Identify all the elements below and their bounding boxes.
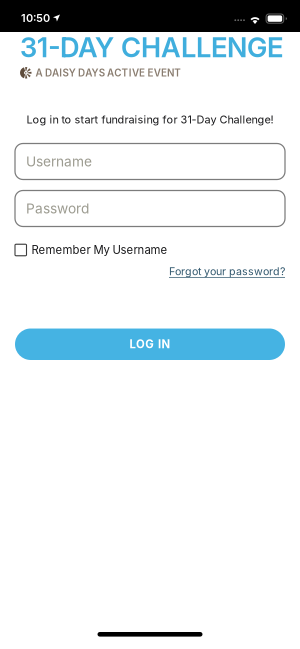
button[interactable]: Forgot your password? xyxy=(169,265,285,278)
staticText: A DAISY DAYS ACTIVE EVENT xyxy=(35,67,181,79)
staticText: Username xyxy=(26,153,92,170)
staticText: Password xyxy=(26,200,89,217)
staticText: 31-DAY CHALLENGE xyxy=(20,31,283,64)
staticText: Log in to start fundraising for 31-Day C… xyxy=(26,113,273,126)
button[interactable]: LOG IN xyxy=(15,328,285,360)
staticText: Forgot your password? xyxy=(169,265,285,278)
button[interactable]: Remember My Username xyxy=(15,243,285,257)
textField[interactable]: Username xyxy=(26,153,92,170)
staticText: LOG IN xyxy=(129,337,170,351)
staticText: Remember My Username xyxy=(31,243,167,257)
staticText: 10:50 xyxy=(21,11,50,25)
textField[interactable]: Password xyxy=(26,200,89,217)
